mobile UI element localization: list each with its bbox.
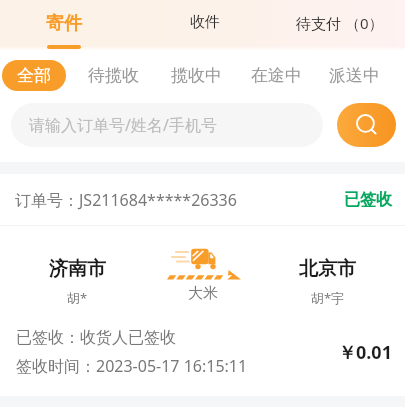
button[interactable]: 揽收中 (161, 60, 231, 91)
staticText: 胡*宇 (311, 289, 345, 307)
staticText: 请输入订单号/姓名/手机号 (29, 114, 217, 136)
staticText: 胡* (67, 289, 88, 307)
staticText: ￥0.01 (338, 340, 392, 365)
staticText: 在途中 (251, 65, 302, 86)
button[interactable]: 待支付 （0） (285, 0, 395, 48)
staticText: 揽收中 (171, 65, 222, 86)
staticText: 已签收 (344, 190, 392, 210)
button[interactable]: 待揽收 (78, 60, 148, 91)
button[interactable]: 请输入订单号/姓名/手机号 (11, 103, 323, 147)
staticText: 待支付 （0） (296, 13, 384, 33)
staticText: 签收时间：2023-05-17 16:15:11 (16, 355, 248, 377)
staticText: 派送中 (329, 65, 380, 86)
staticText: 待揽收 (88, 65, 139, 86)
staticText: 已签收：收货人已签收 (16, 328, 176, 348)
button[interactable]: 全部 (2, 60, 66, 91)
button[interactable]: 订单号：JS211684*****26336 (0, 174, 405, 225)
staticText: 订单号：JS211684*****26336 (15, 189, 237, 211)
button[interactable]: Search (337, 103, 396, 147)
staticText: 济南市 (49, 257, 106, 281)
button[interactable]: 在途中 (241, 60, 311, 91)
button[interactable]: 收件 (158, 0, 252, 48)
staticText: 寄件 (46, 12, 82, 35)
staticText: 全部 (17, 65, 51, 86)
staticText: 大米 (188, 284, 218, 303)
staticText: 北京市 (299, 257, 356, 281)
button[interactable]: 派送中 (319, 60, 389, 91)
staticText: 收件 (190, 13, 220, 32)
button[interactable]: 寄件 (18, 0, 110, 48)
